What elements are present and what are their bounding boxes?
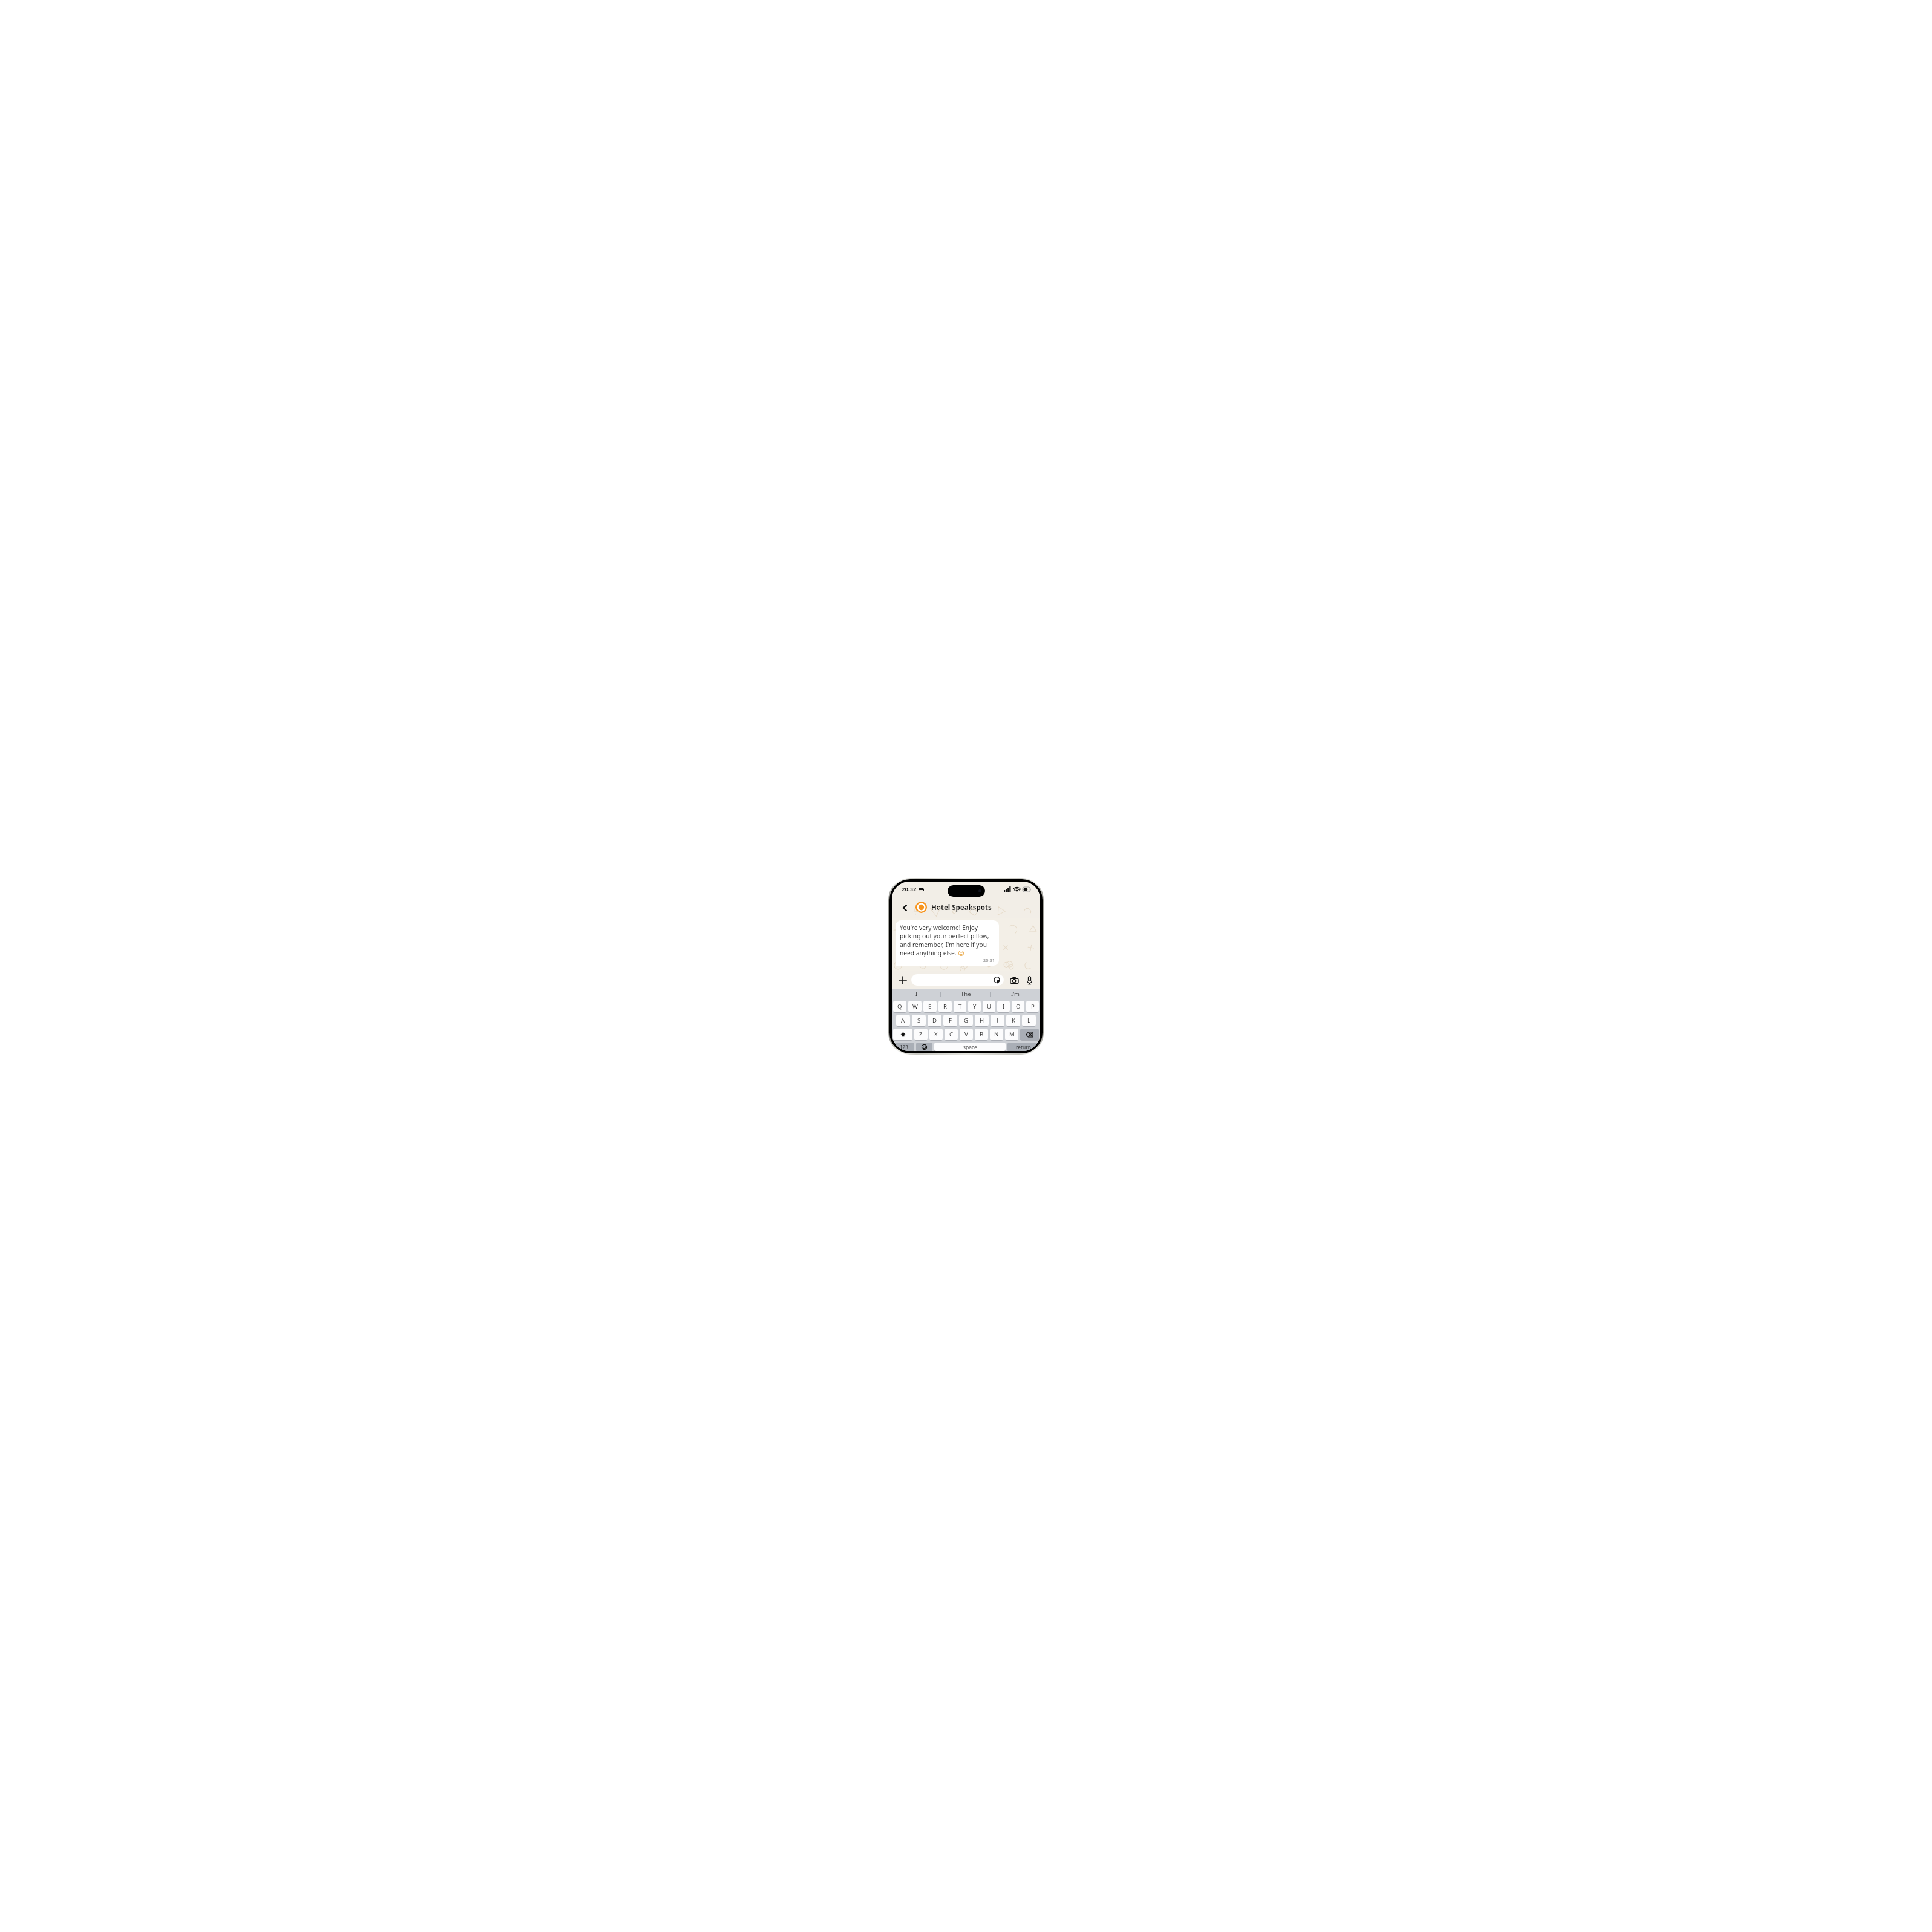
- button[interactable]: D: [928, 1015, 941, 1026]
- button[interactable]: Shift: [893, 1029, 912, 1040]
- staticText: I'm: [1011, 990, 1020, 998]
- staticText: space: [963, 1044, 977, 1050]
- staticText: return: [1016, 1044, 1031, 1050]
- button[interactable]: I'm: [991, 989, 1040, 999]
- button[interactable]: T: [954, 1001, 966, 1012]
- button[interactable]: space: [934, 1043, 1006, 1051]
- button[interactable]: E: [923, 1001, 937, 1012]
- button[interactable]: C: [945, 1029, 958, 1040]
- button[interactable]: S: [912, 1015, 926, 1026]
- button[interactable]: J: [991, 1015, 1004, 1026]
- staticText: Q: [897, 1003, 902, 1010]
- staticText: Hotel Speakspots: [931, 903, 992, 912]
- button[interactable]: K: [1006, 1015, 1020, 1026]
- button[interactable]: L: [1022, 1015, 1036, 1026]
- button[interactable]: U: [983, 1001, 995, 1012]
- staticText: F: [949, 1017, 952, 1024]
- button[interactable]: Z: [914, 1029, 928, 1040]
- staticText: 20.31: [983, 957, 995, 963]
- button[interactable]: Y: [968, 1001, 981, 1012]
- button[interactable]: Camera: [1008, 974, 1020, 986]
- staticText: M: [1009, 1030, 1015, 1038]
- staticText: R: [943, 1003, 947, 1010]
- button[interactable]: G: [959, 1015, 973, 1026]
- staticText: I: [1003, 1003, 1005, 1010]
- button[interactable]: Hotel Speakspots: [915, 902, 992, 913]
- staticText: U: [987, 1003, 992, 1010]
- button[interactable]: I: [892, 989, 941, 999]
- staticText: The: [961, 990, 971, 998]
- staticText: X: [934, 1030, 938, 1038]
- staticText: I: [915, 990, 918, 998]
- staticText: D: [932, 1017, 937, 1024]
- button[interactable]: The: [941, 989, 991, 999]
- button[interactable]: Emoji: [916, 1043, 932, 1051]
- staticText: You're very welcome! Enjoy picking out y…: [900, 923, 995, 957]
- button[interactable]: R: [938, 1001, 952, 1012]
- button[interactable]: B: [975, 1029, 988, 1040]
- staticText: K: [1012, 1017, 1015, 1024]
- button[interactable]: X: [929, 1029, 943, 1040]
- button[interactable]: A: [896, 1015, 910, 1026]
- button[interactable]: H: [975, 1015, 989, 1026]
- staticText: B: [980, 1030, 984, 1038]
- staticText: S: [917, 1017, 921, 1024]
- staticText: C: [949, 1030, 954, 1038]
- button[interactable]: V: [960, 1029, 973, 1040]
- staticText: W: [912, 1003, 918, 1010]
- staticText: 123: [900, 1044, 908, 1050]
- button[interactable]: return: [1007, 1043, 1039, 1051]
- button[interactable]: M: [1005, 1029, 1018, 1040]
- button[interactable]: You're very welcome! Enjoy picking out y…: [896, 920, 999, 966]
- staticText: G: [964, 1017, 968, 1024]
- button[interactable]: Q: [893, 1001, 906, 1012]
- staticText: Z: [919, 1030, 923, 1038]
- staticText: J: [997, 1017, 998, 1024]
- button[interactable]: N: [990, 1029, 1003, 1040]
- staticText: 20.32: [902, 885, 917, 893]
- button[interactable]: Voice message: [1023, 974, 1035, 986]
- staticText: L: [1027, 1017, 1031, 1024]
- staticText: N: [994, 1030, 999, 1038]
- staticText: O: [1016, 1003, 1021, 1010]
- staticText: A: [901, 1017, 905, 1024]
- staticText: H: [980, 1017, 984, 1024]
- button[interactable]: Backspace: [1020, 1029, 1039, 1040]
- button[interactable]: Back: [899, 902, 911, 914]
- button[interactable]: O: [1012, 1001, 1024, 1012]
- staticText: E: [928, 1003, 932, 1010]
- button[interactable]: P: [1026, 1001, 1039, 1012]
- staticText: Y: [973, 1003, 977, 1010]
- button[interactable]: [911, 974, 1004, 986]
- button[interactable]: Attach: [897, 974, 909, 986]
- staticText: P: [1031, 1003, 1035, 1010]
- button[interactable]: W: [908, 1001, 922, 1012]
- button[interactable]: 123: [893, 1043, 914, 1051]
- staticText: T: [958, 1003, 962, 1010]
- button[interactable]: F: [943, 1015, 957, 1026]
- staticText: V: [964, 1030, 968, 1038]
- button[interactable]: I: [997, 1001, 1010, 1012]
